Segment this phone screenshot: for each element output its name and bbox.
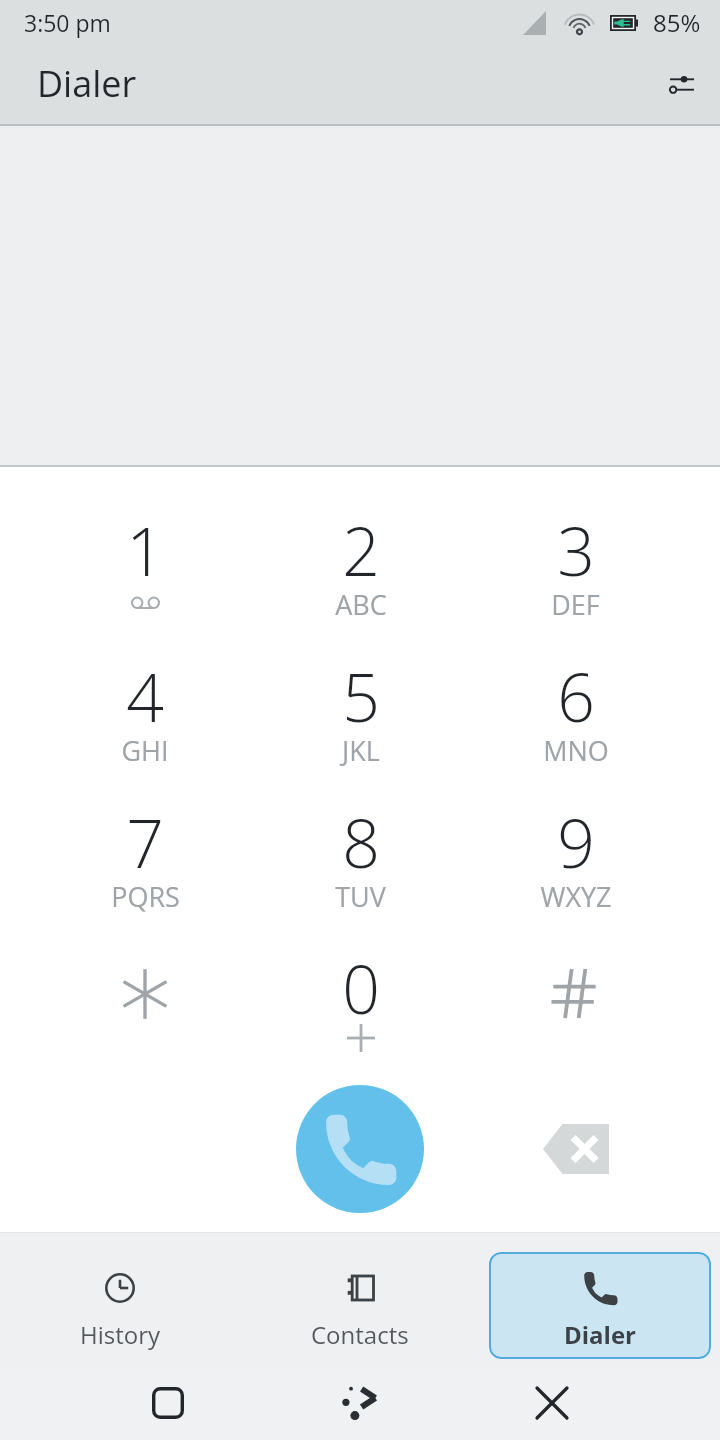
button[interactable]: 6	[468, 651, 683, 797]
button[interactable]: 8	[253, 797, 468, 943]
button[interactable]: Call	[296, 1085, 424, 1213]
button[interactable]: Contacts	[249, 1252, 471, 1359]
staticText: 8	[342, 797, 380, 887]
button[interactable]	[37, 943, 253, 1089]
button[interactable]: Home	[72, 1366, 264, 1440]
button[interactable]: 7	[37, 797, 253, 943]
button[interactable]: 2	[253, 505, 468, 651]
button[interactable]: 3	[468, 505, 683, 651]
staticText: Dialer	[37, 59, 137, 108]
button[interactable]: Close	[456, 1366, 648, 1440]
button[interactable]: Back	[264, 1366, 456, 1440]
staticText: 85%	[653, 6, 701, 39]
button[interactable]: Dialer	[489, 1252, 711, 1359]
staticText: 3	[557, 505, 595, 595]
staticText: Dialer	[564, 1318, 636, 1351]
staticText: GHI	[121, 732, 169, 769]
button[interactable]: 9	[468, 797, 683, 943]
staticText: 6	[557, 651, 595, 741]
button[interactable]: 0	[253, 943, 468, 1089]
staticText: WXYZ	[540, 878, 612, 915]
button[interactable]: Backspace	[528, 1107, 624, 1191]
staticText: TUV	[335, 878, 386, 915]
staticText: 4	[126, 651, 164, 741]
staticText: History	[80, 1318, 161, 1351]
staticText: 9	[557, 797, 595, 887]
staticText: 0	[342, 943, 380, 1033]
staticText: 7	[126, 797, 164, 887]
staticText: MNO	[543, 732, 609, 769]
button[interactable]: 4	[37, 651, 253, 797]
staticText: 2	[342, 505, 380, 595]
staticText: 1	[126, 505, 164, 595]
button[interactable]	[468, 943, 683, 1089]
staticText: PQRS	[111, 878, 180, 915]
staticText: DEF	[551, 586, 600, 623]
button[interactable]: 5	[253, 651, 468, 797]
button[interactable]: History	[9, 1252, 231, 1359]
staticText: 3:50 pm	[24, 7, 111, 38]
button[interactable]: Settings	[654, 56, 710, 112]
button[interactable]: 1	[37, 505, 253, 651]
staticText: 5	[342, 651, 380, 741]
staticText: JKL	[342, 732, 380, 769]
staticText: Contacts	[311, 1318, 409, 1351]
staticText: ABC	[335, 586, 387, 623]
